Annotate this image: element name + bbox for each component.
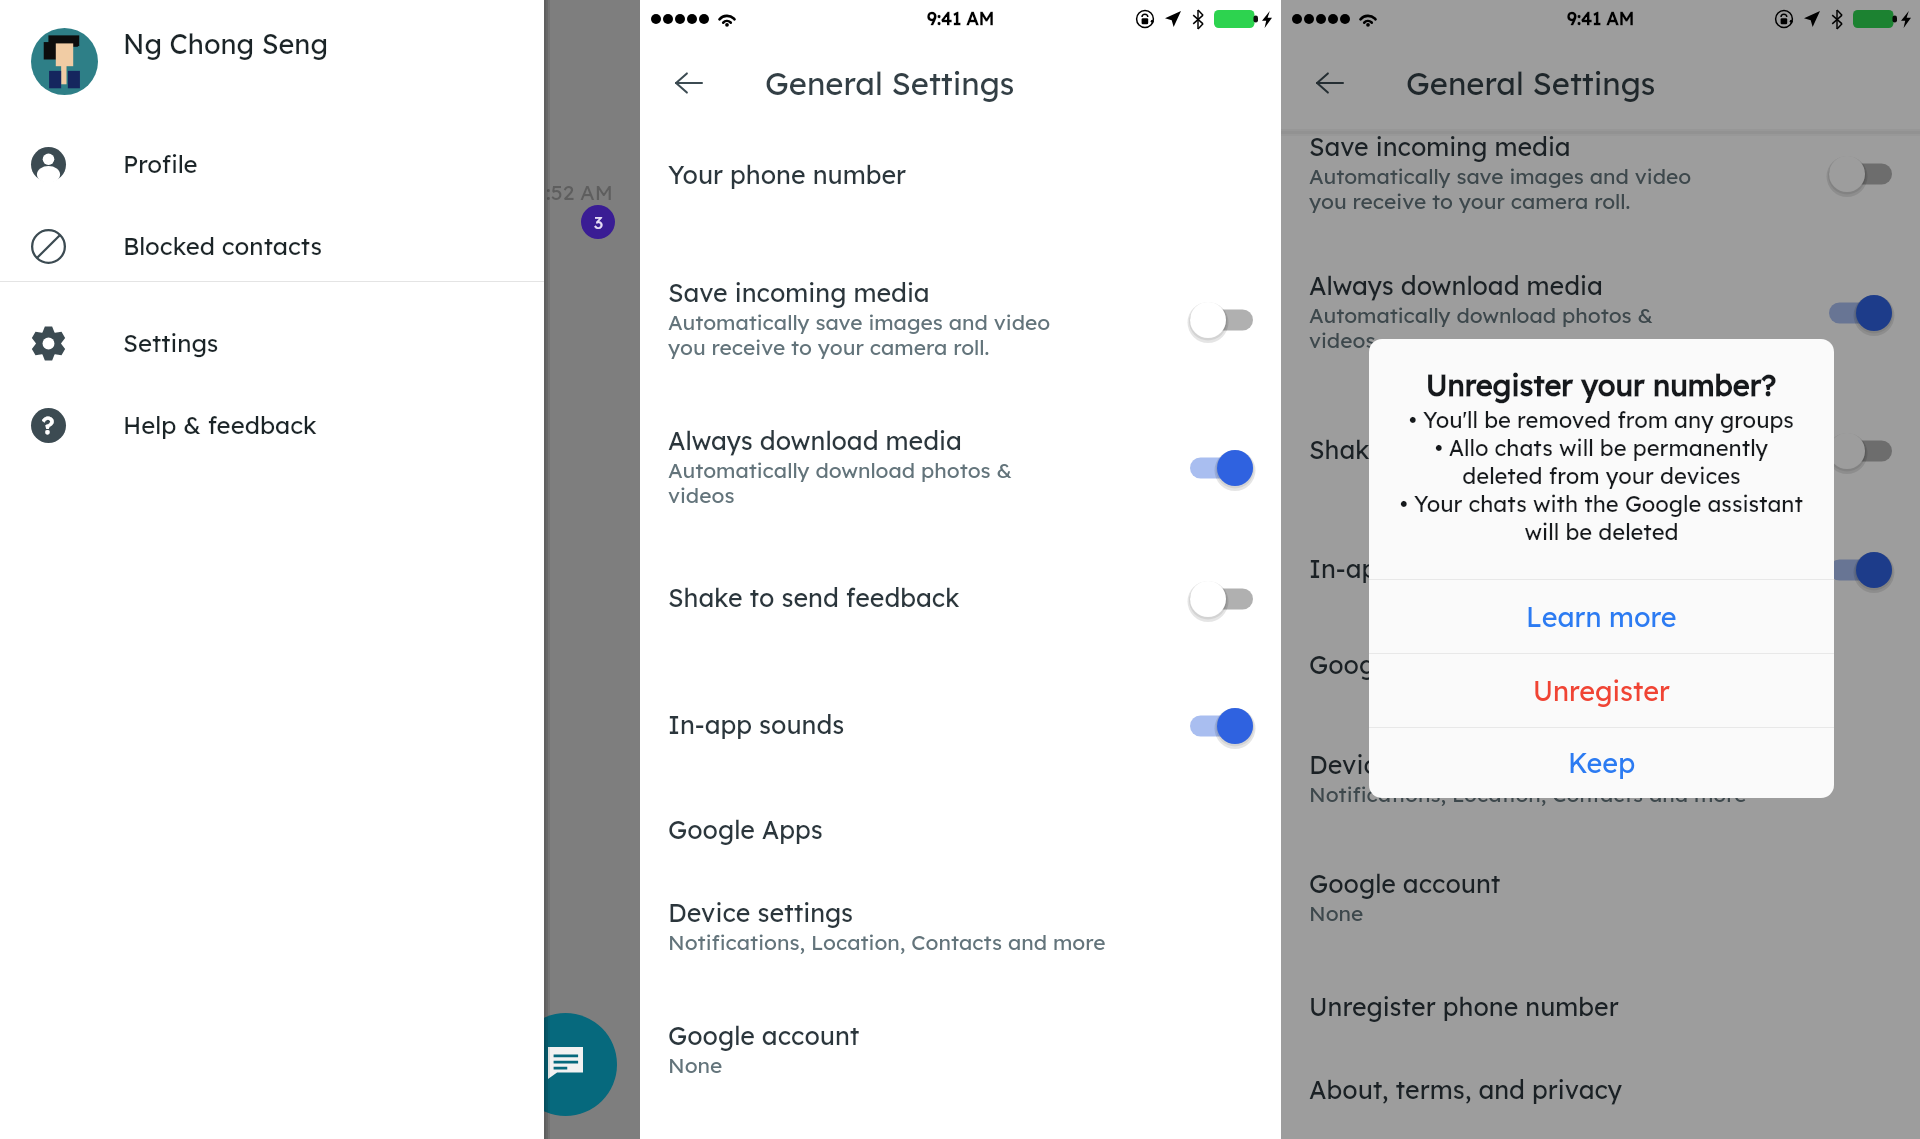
staticText: Google account [668,1020,860,1051]
button[interactable]: Ng Chong Seng [0,17,544,105]
staticText: :52 AM [546,179,613,205]
button[interactable]: In-app sounds [1281,535,1920,597]
staticText: Keep [1568,746,1636,780]
button[interactable]: Learn more [1369,580,1834,654]
staticText: General Settings [765,64,1015,103]
staticText: Ng Chong Seng [123,27,328,61]
button[interactable]: Settings [0,303,544,383]
staticText: Unregister [1533,674,1670,708]
staticText: Automatically download photos & videos [668,457,1012,508]
staticText: Shake to send feedback [668,582,960,613]
button[interactable]: Always download media [1281,252,1920,370]
button[interactable]: Save incoming media [1281,113,1920,231]
staticText: Help & feedback [123,410,317,440]
staticText: ? [42,410,55,440]
staticText: None [1309,900,1364,926]
staticText: Blocked contacts [123,231,322,261]
staticText: Notifications, Location, Contacts and mo… [668,929,1106,955]
staticText: None [668,1052,723,1078]
staticText: Automatically save images and video you … [668,309,1051,360]
staticText: Google account [1309,868,1501,899]
button[interactable]: Back [661,56,715,110]
staticText: Your phone number [668,159,907,190]
button[interactable]: About, terms, and privacy [1281,1056,1920,1118]
button[interactable]: Google account [1281,850,1920,940]
staticText: Automatically save images and video you … [1309,163,1692,214]
button[interactable]: Keep [1369,728,1834,798]
staticText: Learn more [1526,600,1677,634]
staticText: About, terms, and privacy [1309,1074,1623,1105]
button[interactable]: Back [1302,56,1356,110]
staticText: Unregister your number? [1426,367,1777,403]
button[interactable]: Shake to send feedback [1281,416,1920,478]
staticText: Device settings [1309,749,1495,780]
button[interactable]: Device settings [1281,731,1920,821]
button[interactable]: Google account [640,1002,1281,1092]
button[interactable]: Unregister [1369,654,1834,728]
button[interactable]: Profile [0,124,544,204]
staticText: 9:41 AM [1567,7,1635,30]
button[interactable]: ? [0,385,544,465]
staticText: Always download media [1309,270,1603,301]
button[interactable]: Always download media [640,407,1281,525]
staticText: Settings [123,328,219,358]
staticText: Always download media [668,425,962,456]
button[interactable]: Google Apps [640,796,1281,858]
button[interactable]: Google Apps [1281,631,1920,693]
staticText: General Settings [1406,64,1656,103]
button[interactable]: Save incoming media [640,259,1281,377]
staticText: 9:41 AM [927,7,995,30]
staticText: In-app sounds [668,709,845,740]
staticText: In-app sounds [1309,553,1486,584]
staticText: Unregister phone number [1309,991,1619,1022]
button[interactable]: Device settings [640,879,1281,969]
button[interactable]: Shake to send feedback [640,564,1281,626]
button[interactable]: Your phone number [640,141,1281,203]
staticText: Notifications, Location, Contacts and mo… [1309,781,1747,807]
staticText: Save incoming media [668,277,930,308]
staticText: Google Apps [668,814,823,845]
staticText: Automatically download photos & videos [1309,302,1653,353]
staticText: 3 [594,212,603,233]
staticText: • You'll be removed from any groups • Al… [1400,406,1803,546]
button[interactable]: Blocked contacts [0,206,544,286]
staticText: Profile [123,149,198,179]
button[interactable]: New chat [514,1013,617,1116]
staticText: Save incoming media [1309,131,1571,162]
staticText: Shake to send feedback [1309,434,1601,465]
staticText: Google Apps [1309,649,1464,680]
staticText: Device settings [668,897,854,928]
button[interactable]: In-app sounds [640,691,1281,753]
button[interactable]: Unregister phone number [1281,973,1920,1035]
